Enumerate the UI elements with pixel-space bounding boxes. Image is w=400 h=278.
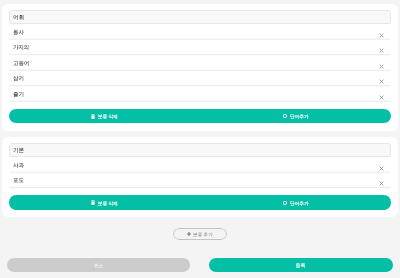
button[interactable]: 분류 삭제 [9,195,200,210]
button[interactable]: 분류 삭제 [9,109,200,123]
button[interactable]: 동사 [9,24,391,40]
button[interactable]: 단어추가 [200,195,391,210]
button[interactable]: 고등어 [9,55,391,71]
staticText: 분류 삭제 [98,200,118,206]
staticText: 고등어 [13,60,377,67]
button[interactable]: 단어추가 [200,109,391,123]
staticText: 분류 추가 [193,231,213,237]
staticText: 가지의 [13,44,377,51]
staticText: 어휘 [13,14,24,21]
staticText: 분류 삭제 [98,113,118,119]
staticText: 기본 [13,147,24,154]
staticText: 등록 [296,262,306,268]
button[interactable]: Delete word [377,87,391,101]
button[interactable]: 어휘 [9,10,391,24]
staticText: 취소 [94,262,104,268]
staticText: 단어추가 [290,113,309,119]
staticText: 포도 [13,177,377,184]
button[interactable]: Delete word [377,71,391,85]
button[interactable]: Delete word [377,40,391,54]
button[interactable]: Delete word [377,56,391,70]
button[interactable]: 등록 [209,258,393,272]
button[interactable]: Delete word [377,158,391,172]
button[interactable]: 포도 [9,172,391,188]
button[interactable]: Delete word [377,25,391,39]
button[interactable]: 기본 [9,143,391,157]
button[interactable]: Delete word [377,173,391,187]
staticText: 삼키 [13,75,377,82]
button[interactable]: 가지의 [9,39,391,55]
button[interactable]: 분류 추가 [173,228,227,240]
button[interactable]: 사과 [9,157,391,173]
button[interactable]: 삼키 [9,70,391,86]
staticText: 즐기 [13,91,377,98]
staticText: 사과 [13,162,377,169]
button[interactable]: 즐기 [9,86,391,102]
button[interactable]: 취소 [7,258,190,272]
staticText: 단어추가 [290,200,309,206]
staticText: 동사 [13,29,377,36]
